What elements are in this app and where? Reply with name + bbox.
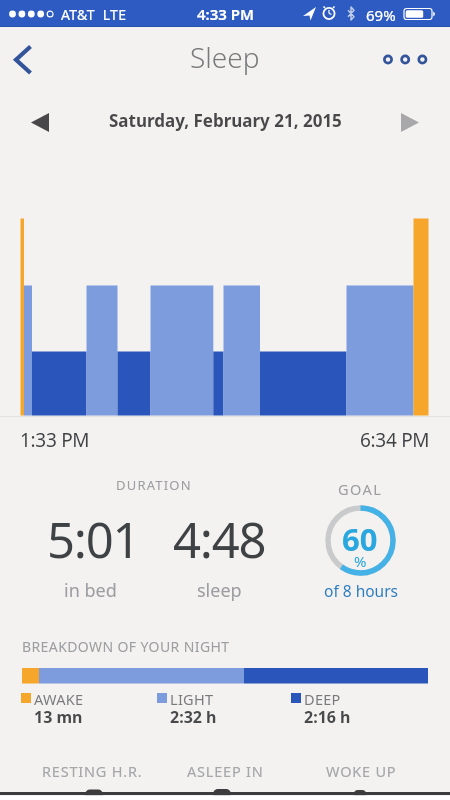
staticText: 60 (342, 518, 378, 560)
staticText: 4:33 PM (197, 4, 254, 24)
staticText: 69% (366, 5, 396, 25)
staticText: 4:48 (173, 506, 266, 573)
button[interactable] (322, 502, 399, 579)
button[interactable] (4, 40, 44, 80)
staticText: sleep (197, 578, 242, 603)
staticText: in bed (64, 578, 117, 603)
staticText: 5:01 (47, 506, 140, 573)
staticText: AT&T LTE (61, 5, 127, 24)
staticText: ASLEEP IN (187, 761, 264, 781)
staticText: LIGHT (170, 689, 214, 709)
staticText: 13 mn (34, 706, 83, 728)
button[interactable] (390, 102, 430, 142)
staticText: 1:33 PM (20, 427, 90, 453)
staticText: 6:34 PM (360, 427, 430, 453)
staticText: DURATION (116, 476, 192, 494)
staticText: Saturday, February 21, 2015 (109, 109, 342, 132)
staticText: 2:32 h (170, 706, 217, 728)
staticText: DEEP (304, 689, 341, 709)
staticText: GOAL (338, 479, 383, 499)
button[interactable] (20, 102, 60, 142)
staticText: BREAKDOWN OF YOUR NIGHT (22, 637, 230, 656)
staticText: % (354, 551, 367, 571)
staticText: Sleep (190, 38, 260, 76)
staticText: of 8 hours (324, 580, 398, 601)
staticText: WOKE UP (326, 761, 397, 781)
button[interactable] (375, 44, 437, 76)
staticText: 2:16 h (304, 706, 351, 728)
staticText: RESTING H.R. (42, 761, 143, 781)
staticText: AWAKE (34, 689, 84, 709)
